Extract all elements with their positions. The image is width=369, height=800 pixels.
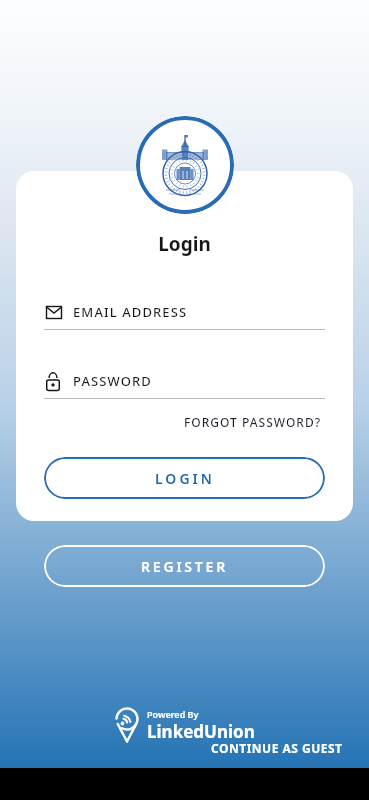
staticText: REGISTER: [141, 557, 229, 576]
staticText: PASSWORD: [73, 372, 152, 390]
button[interactable]: FORGOT PASSWORD?: [184, 414, 322, 430]
staticText: LOGIN: [155, 469, 215, 488]
staticText: Powered By: [147, 708, 199, 720]
button[interactable]: Powered By: [114, 705, 255, 745]
button[interactable]: PASSWORD: [46, 370, 323, 392]
button[interactable]: CONTINUE AS GUEST: [211, 740, 343, 756]
staticText: LinkedUnion: [147, 720, 255, 743]
button[interactable]: REGISTER: [44, 545, 325, 587]
staticText: EMAIL ADDRESS: [73, 303, 188, 321]
button[interactable]: LOGIN: [44, 457, 325, 499]
button[interactable]: EMAIL ADDRESS: [46, 301, 323, 323]
staticText: Login: [16, 231, 353, 257]
staticText: CONTINUE AS GUEST: [211, 740, 343, 756]
